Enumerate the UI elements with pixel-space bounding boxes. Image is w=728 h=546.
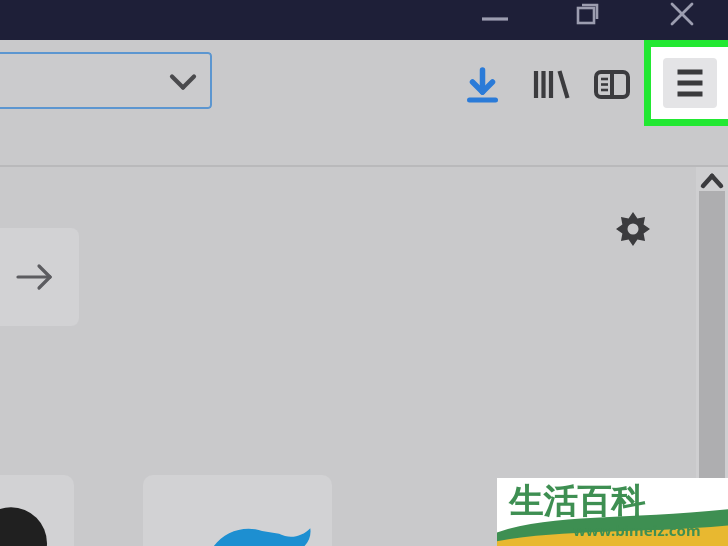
button[interactable]: Restore (565, 0, 615, 26)
staticText: www.bimeiz.com (573, 520, 701, 540)
button[interactable]: Shortcut (0, 475, 74, 546)
button[interactable]: Sidebars (588, 61, 633, 106)
button[interactable]: Next (0, 228, 79, 326)
button[interactable]: Scroll up (696, 167, 728, 191)
button[interactable]: Address bar (0, 52, 212, 109)
button[interactable]: Twitter (143, 475, 332, 546)
button[interactable]: Downloads (460, 61, 505, 106)
button[interactable]: Settings (615, 211, 651, 247)
staticText: 生活百科 (509, 480, 645, 523)
button[interactable]: Minimize (470, 0, 520, 26)
button[interactable]: Close (658, 0, 708, 26)
button[interactable]: Open menu (663, 58, 717, 108)
button[interactable]: Library (525, 61, 570, 106)
